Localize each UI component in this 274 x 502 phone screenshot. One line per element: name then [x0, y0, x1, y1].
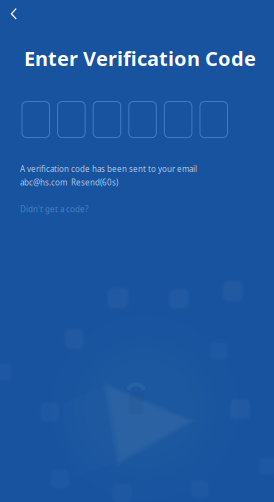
staticText: Didn't get a code?: [20, 204, 88, 214]
staticText: Enter Verification Code: [24, 45, 256, 72]
staticText: abc@hs.com Resend(60s): [20, 177, 118, 188]
button[interactable]: Back: [0, 0, 30, 28]
staticText: A verification code has been sent to you…: [20, 164, 197, 174]
button[interactable]: Didn't get a code?: [0, 204, 88, 214]
